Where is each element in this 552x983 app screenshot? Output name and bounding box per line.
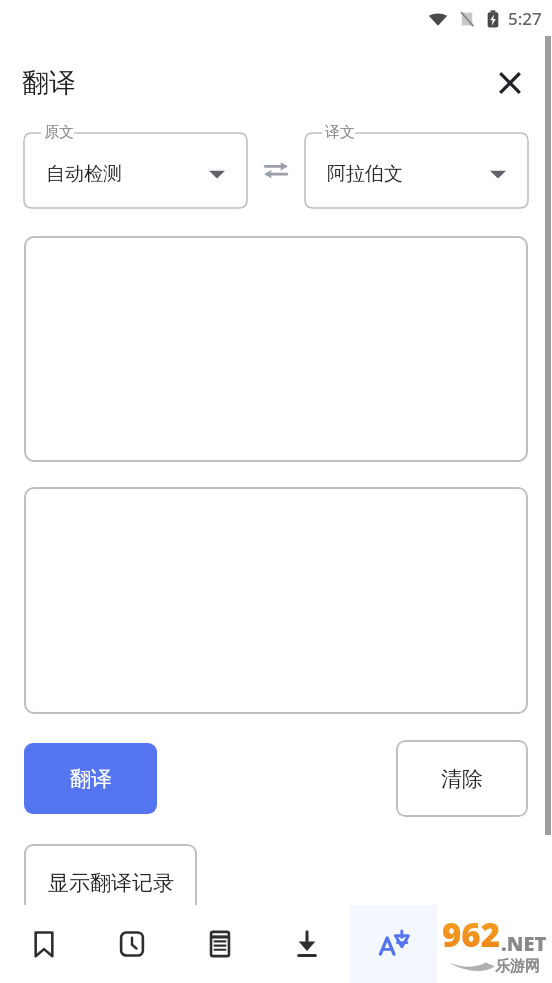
button[interactable]: 原文 bbox=[24, 133, 247, 208]
staticText: 显示翻译记录 bbox=[48, 870, 174, 896]
button[interactable] bbox=[24, 487, 528, 714]
button[interactable]: 清除 bbox=[396, 740, 528, 817]
staticText: 962 bbox=[442, 912, 501, 957]
button[interactable]: 译文 bbox=[305, 133, 528, 208]
button[interactable]: Close bbox=[490, 63, 530, 103]
button[interactable]: 翻译 bbox=[24, 743, 157, 814]
staticText: 原文 bbox=[44, 123, 74, 142]
button[interactable]: Bookmarks bbox=[0, 905, 88, 983]
staticText: 翻译 bbox=[70, 766, 112, 792]
button[interactable]: Translate bbox=[350, 905, 437, 983]
staticText: 清除 bbox=[441, 766, 483, 792]
button[interactable]: History bbox=[88, 905, 176, 983]
staticText: 翻译 bbox=[22, 66, 76, 100]
button[interactable]: Reading list bbox=[176, 905, 263, 983]
button[interactable]: Downloads bbox=[263, 905, 350, 983]
button[interactable] bbox=[24, 236, 528, 462]
staticText: 阿拉伯文 bbox=[327, 162, 403, 186]
staticText: 译文 bbox=[325, 123, 355, 142]
staticText: 自动检测 bbox=[46, 162, 122, 186]
button[interactable]: 显示翻译记录 bbox=[24, 844, 197, 921]
button[interactable]: Swap languages bbox=[247, 130, 305, 210]
staticText: 乐游网 bbox=[495, 957, 540, 976]
staticText: .NET bbox=[501, 930, 547, 957]
staticText: 5:27 bbox=[508, 7, 542, 30]
